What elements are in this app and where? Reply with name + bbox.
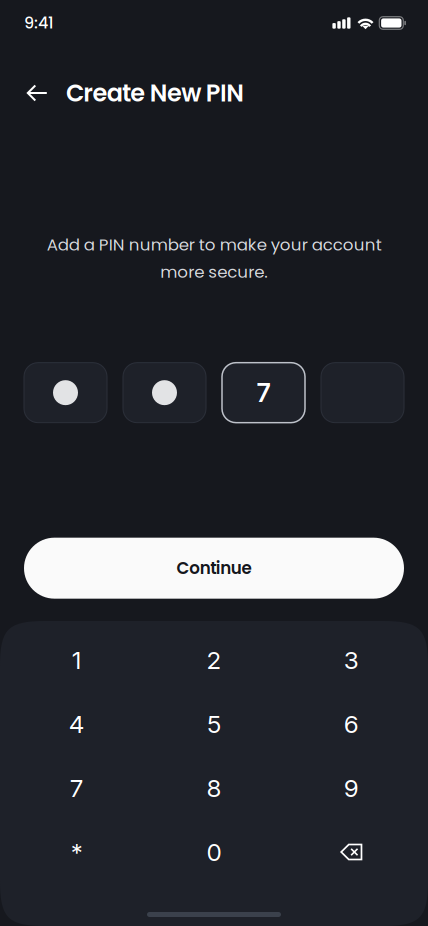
staticText: 7 [256, 377, 270, 408]
button[interactable]: 8 [145, 756, 283, 820]
button[interactable]: 4 [8, 692, 145, 756]
button[interactable]: 5 [145, 692, 283, 756]
staticText: 9 [344, 773, 359, 803]
button[interactable]: 2 [145, 628, 283, 692]
button[interactable]: 9 [283, 756, 420, 820]
button[interactable]: 3 [283, 628, 420, 692]
staticText: 1 [72, 645, 82, 675]
staticText: 7 [70, 773, 84, 803]
button[interactable]: PIN digit 2 [123, 363, 206, 423]
button[interactable]: PIN digit 1 [24, 363, 107, 423]
staticText: 4 [69, 709, 85, 739]
staticText: 8 [206, 773, 221, 803]
button[interactable]: Back [17, 73, 57, 113]
staticText: Continue [177, 556, 251, 580]
button[interactable]: Continue [24, 538, 404, 599]
staticText: 5 [207, 709, 221, 739]
button[interactable]: 7 [8, 756, 145, 820]
staticText: 9:41 [24, 12, 54, 34]
button[interactable]: 0 [145, 820, 283, 884]
staticText: * [71, 837, 83, 867]
staticText: 6 [344, 709, 359, 739]
staticText: 0 [206, 837, 221, 867]
button[interactable]: 1 [8, 628, 145, 692]
button[interactable]: PIN digit 3 [222, 363, 305, 423]
staticText: 3 [344, 645, 359, 675]
button[interactable]: * [8, 820, 145, 884]
button[interactable]: 6 [283, 692, 420, 756]
staticText: Add a PIN number to make your account mo… [46, 233, 381, 284]
staticText: Create New PIN [66, 76, 244, 110]
staticText: 2 [206, 645, 221, 675]
button[interactable]: Delete [283, 820, 420, 884]
